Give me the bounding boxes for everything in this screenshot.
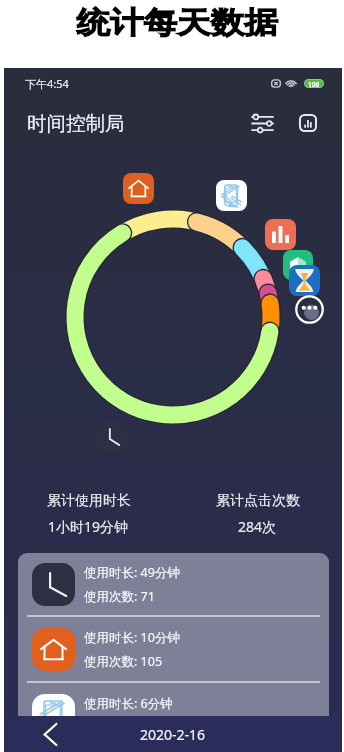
button[interactable]: 使用时长: 49分钟	[18, 553, 329, 615]
button[interactable]: Home app	[123, 173, 154, 204]
button[interactable]: 使用时长: 6分钟	[18, 683, 329, 747]
button[interactable]: Timer app	[289, 265, 320, 296]
staticText: 累计使用时长	[47, 492, 131, 510]
staticText: 时间控制局	[27, 111, 125, 136]
button[interactable]: 使用时长: 10分钟	[18, 617, 329, 681]
staticText: 100	[308, 80, 320, 87]
staticText: 累计点击次数	[216, 492, 300, 510]
button[interactable]: Clock app	[96, 421, 128, 453]
staticText: 284次	[238, 517, 277, 536]
button[interactable]: Statistics	[292, 107, 324, 139]
button[interactable]: Filter	[246, 107, 278, 139]
button[interactable]: More apps	[295, 295, 324, 324]
staticText: 使用次数: 105	[84, 653, 163, 670]
staticText: 使用时长: 49分钟	[84, 564, 180, 581]
button[interactable]: Notes app	[283, 250, 313, 280]
staticText: 2020-2-16	[140, 725, 206, 744]
button[interactable]: Back	[38, 722, 62, 746]
button[interactable]: Screen time app	[216, 180, 247, 211]
staticText: 使用次数: 23	[84, 719, 155, 736]
staticText: 使用时长: 10分钟	[84, 629, 180, 646]
staticText: 1小时19分钟	[48, 517, 129, 536]
staticText: 使用时长: 6分钟	[84, 695, 173, 712]
staticText: 下午4:54	[25, 76, 69, 91]
button[interactable]: Chart app	[265, 219, 296, 250]
staticText: 使用次数: 71	[84, 588, 155, 605]
staticText: 统计每天数据	[76, 4, 278, 42]
